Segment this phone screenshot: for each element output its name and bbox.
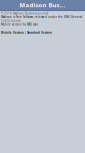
staticText: Mobile version by MBJ Labs: [1, 23, 38, 26]
staticText: Mobile Version | Standard Version: [1, 31, 52, 34]
staticText: Madison Bus...: [19, 1, 65, 9]
staticText: Public License.: [1, 19, 22, 22]
staticText: © 2018 Madison Business Journal: [1, 11, 48, 15]
staticText: Madison is Free Software released under …: [1, 15, 82, 19]
